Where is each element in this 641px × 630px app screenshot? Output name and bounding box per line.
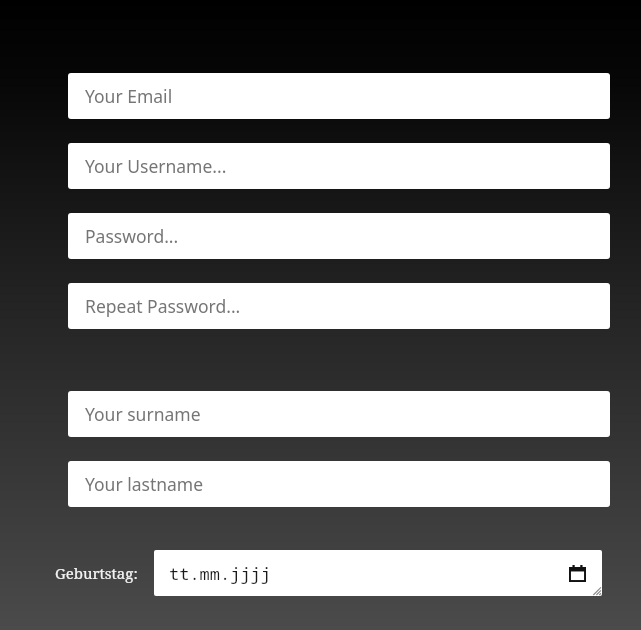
button[interactable]: Open calendar picker xyxy=(564,560,590,586)
button[interactable]: Your lastname xyxy=(68,461,610,507)
staticText: Geburtstag: xyxy=(55,563,138,583)
staticText: Your Email xyxy=(85,84,173,108)
button[interactable]: Your Username... xyxy=(68,143,610,189)
staticText: Your surname xyxy=(85,402,201,426)
staticText: Password... xyxy=(85,224,179,248)
staticText: Your lastname xyxy=(85,472,204,496)
button[interactable]: Your Email xyxy=(68,73,610,119)
button[interactable]: Your surname xyxy=(68,391,610,437)
button[interactable]: Password... xyxy=(68,213,610,259)
button[interactable]: Repeat Password... xyxy=(68,283,610,329)
button[interactable]: tt.mm.jjjj xyxy=(154,550,602,596)
staticText: tt.mm.jjjj xyxy=(169,562,271,585)
staticText: Your Username... xyxy=(85,154,227,178)
staticText: Repeat Password... xyxy=(85,294,241,318)
